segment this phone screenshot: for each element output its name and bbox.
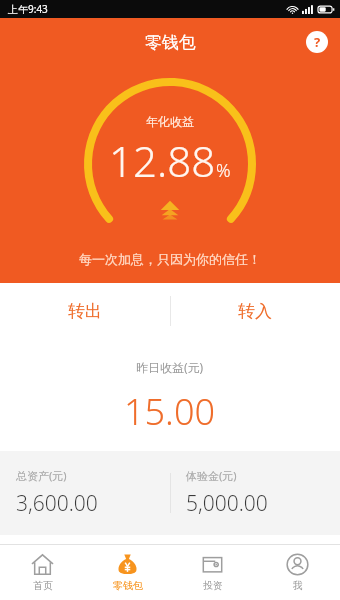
button[interactable]: 我 [255,545,340,600]
staticText: 首页 [33,579,53,592]
staticText: 15.00 [124,387,216,436]
staticText: 总资产(元) [16,468,67,483]
staticText: 我 [293,579,303,592]
button[interactable]: 转入 [170,283,340,339]
button[interactable]: 首页 [0,545,85,600]
staticText: 3,600.00 [16,489,98,518]
staticText: 转入 [238,301,272,322]
button[interactable]: 总资产(元) [0,451,170,535]
button[interactable]: 体验金(元) [170,451,340,535]
staticText: 零钱包 [145,32,196,53]
staticText: % [216,158,231,183]
staticText: 转出 [68,301,102,322]
staticText: 年化收益 [146,114,194,129]
button[interactable]: 帮助 [306,31,328,53]
staticText: ? [314,33,321,51]
staticText: 零钱包 [113,579,143,592]
button[interactable]: 零钱包 [85,545,170,600]
staticText: 体验金(元) [186,468,237,483]
staticText: 12.88 [109,132,216,189]
button[interactable]: 投资 [170,545,255,600]
staticText: 每一次加息，只因为你的信任！ [79,251,261,267]
staticText: 投资 [203,579,223,592]
staticText: 昨日收益(元) [136,359,204,375]
staticText: 上午9:43 [8,2,48,16]
staticText: 5,000.00 [186,489,268,518]
button[interactable]: 转出 [0,283,170,339]
